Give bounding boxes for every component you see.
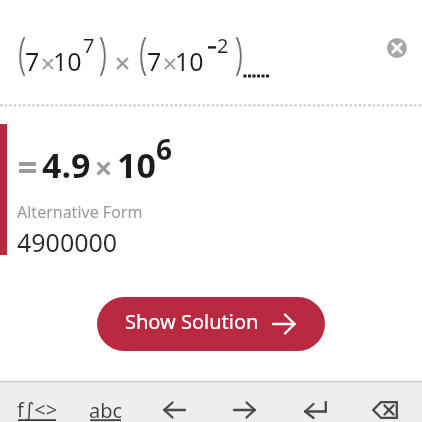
staticText: abc [89, 397, 123, 422]
staticText: 10 [175, 44, 204, 78]
button[interactable]: f∫<> [12, 394, 62, 422]
button[interactable]: Enter [295, 392, 336, 422]
staticText: 7 [147, 44, 162, 78]
button[interactable]: Backspace [363, 392, 407, 422]
staticText: 4.9 [42, 142, 91, 188]
button[interactable]: abc [84, 394, 128, 422]
staticText: 10 [117, 142, 156, 188]
staticText: 6 [156, 130, 173, 168]
button[interactable]: Back [154, 393, 195, 422]
staticText: 4900000 [17, 225, 118, 259]
staticText: 10 [53, 44, 82, 78]
staticText: 7 [25, 44, 40, 78]
button[interactable]: Show Solution [97, 297, 325, 351]
staticText: Show Solution [125, 308, 259, 335]
button[interactable]: Clear [379, 30, 415, 66]
staticText: 2 [217, 32, 229, 59]
staticText: f∫<> [17, 396, 58, 422]
staticText: 7 [83, 32, 95, 59]
button[interactable]: Forward [224, 393, 265, 422]
staticText: Alternative Form [17, 201, 143, 223]
